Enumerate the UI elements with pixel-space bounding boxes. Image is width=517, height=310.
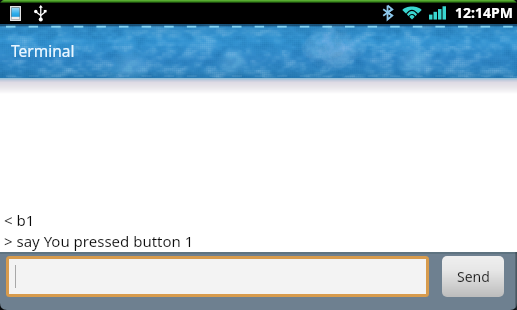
button[interactable]: Send [442, 256, 504, 297]
staticText: Terminal [11, 40, 75, 61]
button[interactable] [6, 256, 429, 297]
other: USB connected [34, 5, 47, 21]
staticText: Send [457, 267, 490, 286]
staticText: 12:14PM [455, 3, 513, 22]
other: Screenshot captured [10, 6, 21, 21]
staticText: < b1 > say You pressed button 1 [4, 210, 194, 252]
